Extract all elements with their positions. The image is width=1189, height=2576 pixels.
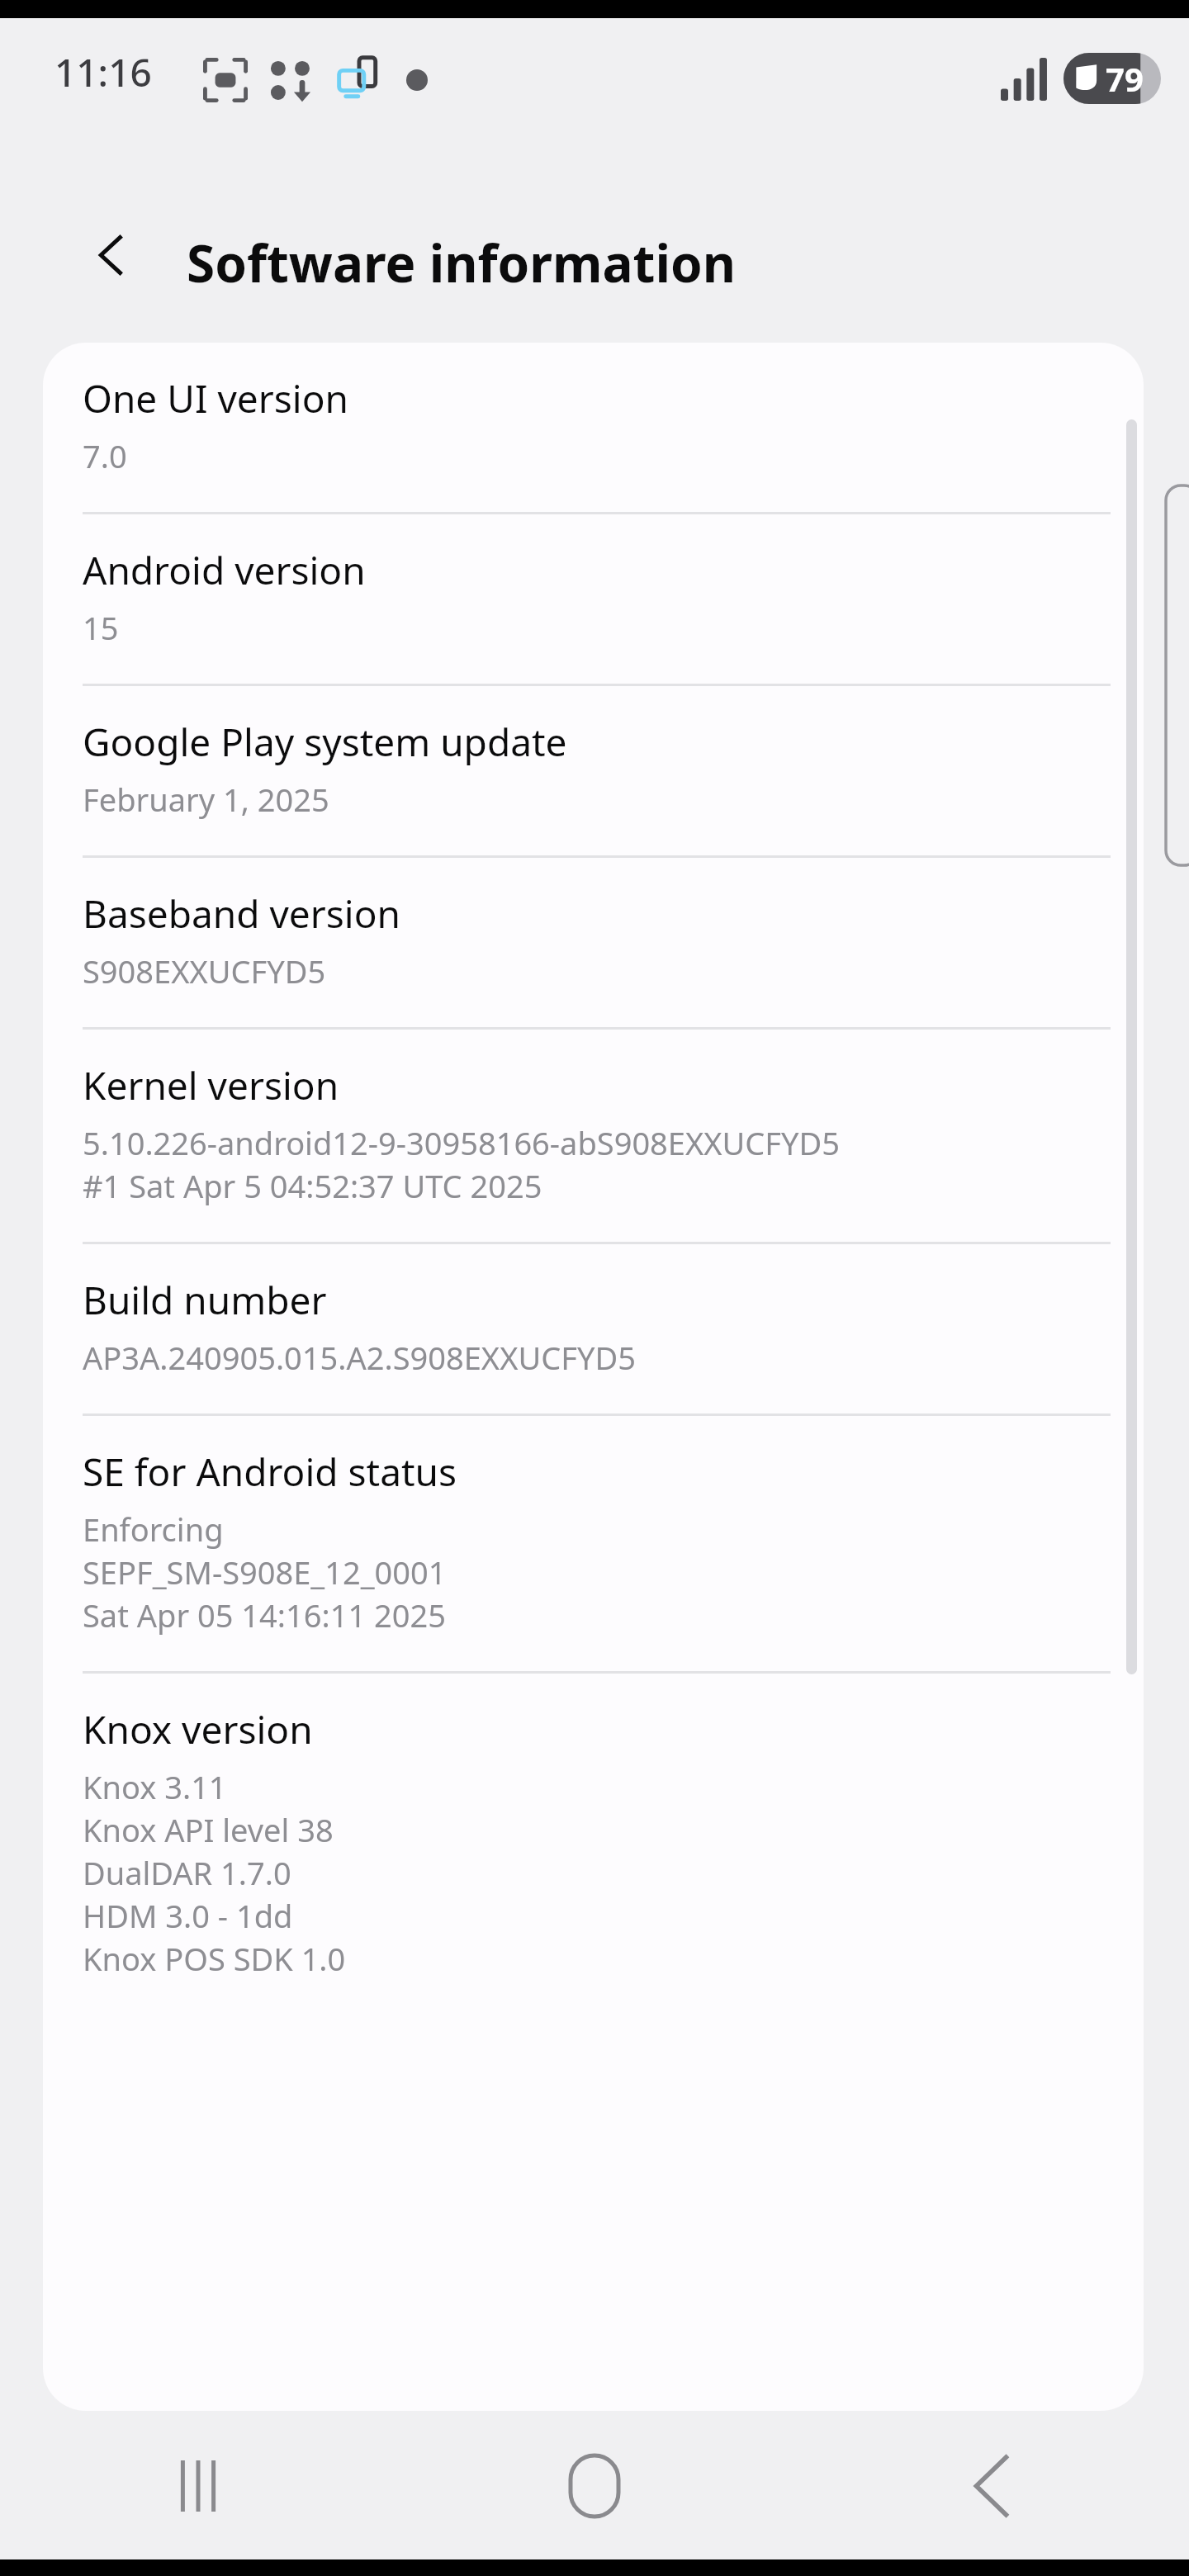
staticText: One UI version — [83, 372, 348, 424]
staticText: 79 — [1106, 56, 1144, 101]
staticText: 5.10.226-android12-9-30958166-abS908EXXU… — [83, 1121, 841, 1164]
staticText: Android version — [83, 544, 366, 596]
staticText: Knox version — [83, 1703, 313, 1755]
button[interactable]: Navigate up — [66, 210, 157, 301]
staticText: SEPF_SM-S908E_12_0001 — [83, 1551, 447, 1593]
staticText: DualDAR 1.7.0 — [83, 1851, 291, 1894]
button[interactable]: One UI version — [43, 343, 1144, 512]
staticText: Sat Apr 05 14:16:11 2025 — [83, 1593, 446, 1636]
staticText: Knox 3.11 — [83, 1765, 227, 1808]
staticText: Knox API level 38 — [83, 1808, 334, 1851]
staticText: Enforcing — [83, 1508, 224, 1551]
staticText: AP3A.240905.015.A2.S908EXXUCFYD5 — [83, 1336, 636, 1379]
staticText: S908EXXUCFYD5 — [83, 949, 326, 992]
staticText: HDM 3.0 - 1dd — [83, 1894, 293, 1937]
button[interactable]: Baseband version — [43, 858, 1144, 1027]
button[interactable]: Kernel version — [43, 1030, 1144, 1242]
button[interactable]: Home — [516, 2413, 673, 2559]
staticText: 15 — [83, 606, 119, 649]
staticText: February 1, 2025 — [83, 778, 329, 821]
staticText: Google Play system update — [83, 716, 567, 768]
button[interactable]: Back — [912, 2413, 1069, 2559]
button[interactable]: SE for Android status — [43, 1416, 1144, 1671]
button[interactable]: Google Play system update — [43, 686, 1144, 855]
staticText: SE for Android status — [83, 1446, 457, 1498]
staticText: Kernel version — [83, 1059, 339, 1111]
staticText: Knox POS SDK 1.0 — [83, 1937, 346, 1980]
button[interactable]: Build number — [43, 1244, 1144, 1413]
staticText: 7.0 — [83, 434, 127, 477]
staticText: Software information — [187, 228, 737, 297]
staticText: Build number — [83, 1274, 327, 1326]
button[interactable]: Android version — [43, 514, 1144, 684]
button[interactable]: Knox version — [43, 1674, 1144, 2015]
staticText: #1 Sat Apr 5 04:52:37 UTC 2025 — [83, 1164, 542, 1207]
button[interactable]: Recent apps — [120, 2413, 277, 2559]
staticText: Baseband version — [83, 888, 400, 940]
staticText: 11:16 — [54, 46, 152, 98]
